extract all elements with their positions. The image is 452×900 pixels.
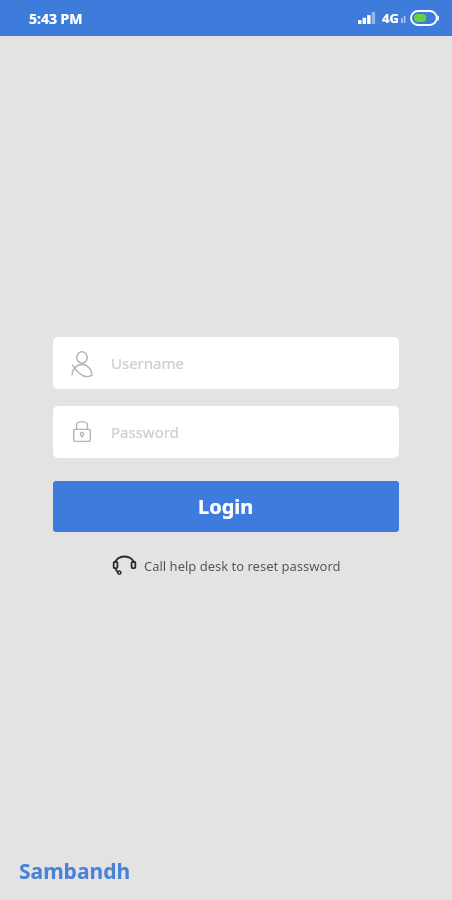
staticText: Call help desk to reset password — [144, 557, 341, 575]
other: Call help desk — [112, 553, 137, 578]
staticText: 5:43 PM — [29, 9, 83, 28]
button[interactable]: Login — [53, 481, 399, 532]
button[interactable]: Call help desk — [53, 553, 399, 578]
button[interactable]: Username — [53, 337, 399, 389]
staticText: Sambandh — [19, 857, 131, 886]
staticText: 4G — [382, 9, 399, 27]
button[interactable]: Password — [53, 406, 399, 458]
staticText: Password — [111, 422, 179, 442]
staticText: Login — [198, 493, 254, 520]
staticText: Username — [111, 353, 184, 373]
